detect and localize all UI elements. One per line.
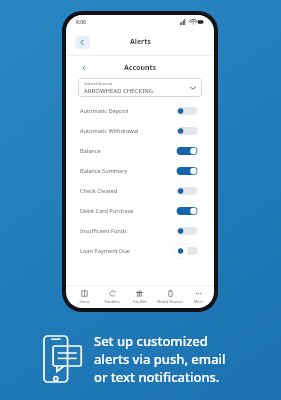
staticText: Pay Bills bbox=[133, 299, 147, 304]
button[interactable]: Pay Bills bbox=[126, 286, 153, 308]
button[interactable]: Home bbox=[70, 286, 98, 308]
button[interactable]: Mobile Deposit bbox=[153, 286, 187, 308]
button[interactable]: Back bbox=[75, 36, 90, 49]
button[interactable]: Loan Payment Due bbox=[80, 241, 200, 261]
staticText: Loan Payment Due bbox=[80, 247, 130, 255]
button[interactable]: Check Cleared bbox=[80, 181, 200, 201]
staticText: Alerts bbox=[130, 37, 151, 47]
staticText: Accounts bbox=[124, 63, 157, 73]
staticText: Check Cleared bbox=[80, 187, 118, 195]
staticText: Debit Card Purchase bbox=[80, 207, 134, 215]
button[interactable]: Balance Summary bbox=[80, 161, 200, 181]
button[interactable]: Transfers bbox=[98, 286, 126, 308]
staticText: Mobile Deposit bbox=[157, 299, 183, 304]
other: Alert notifications bbox=[44, 334, 82, 384]
staticText: Automatic Deposit bbox=[80, 107, 129, 115]
button[interactable]: Selected Account bbox=[78, 78, 202, 97]
staticText: ARROWHEAD CHECKING bbox=[84, 87, 154, 95]
staticText: 8:00 bbox=[76, 19, 86, 26]
button[interactable]: Balance bbox=[80, 141, 200, 161]
staticText: Balance Summary bbox=[80, 167, 128, 175]
staticText: Transfers bbox=[104, 299, 120, 304]
staticText: Insufficient Funds bbox=[80, 227, 127, 235]
staticText: alerts via push, email bbox=[94, 350, 226, 368]
staticText: Home bbox=[79, 299, 90, 304]
button[interactable]: Insufficient Funds bbox=[80, 221, 200, 241]
staticText: or text notifications. bbox=[94, 368, 220, 386]
staticText: Set up customized bbox=[94, 332, 208, 350]
button[interactable]: Automatic Withdrawal bbox=[80, 121, 200, 141]
staticText: More bbox=[194, 299, 203, 304]
staticText: Balance bbox=[80, 147, 101, 155]
button[interactable]: Back to accounts bbox=[80, 64, 88, 72]
button[interactable]: Debit Card Purchase bbox=[80, 201, 200, 221]
button[interactable]: Automatic Deposit bbox=[80, 101, 200, 121]
button[interactable]: More bbox=[187, 286, 210, 308]
staticText: Automatic Withdrawal bbox=[80, 127, 139, 135]
staticText: Selected Account bbox=[84, 81, 113, 86]
